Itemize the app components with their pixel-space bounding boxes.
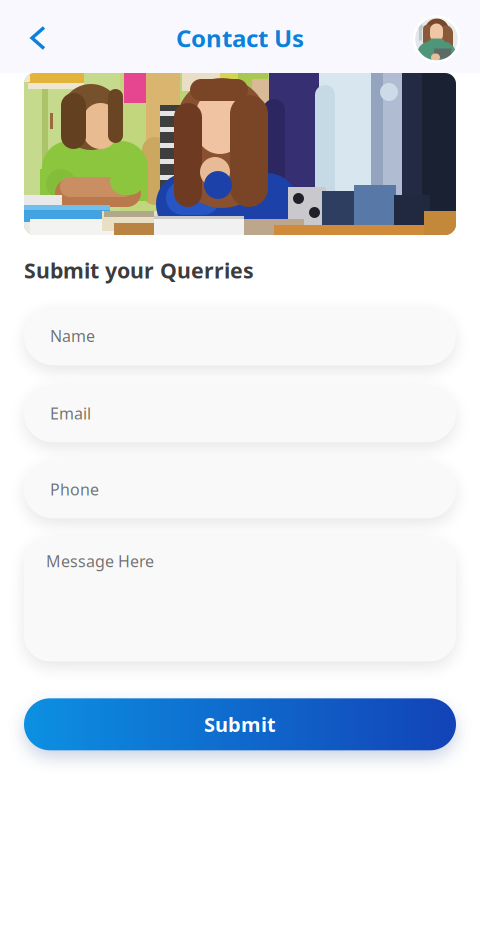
button[interactable]: Name [24, 306, 456, 365]
button[interactable]: Back [14, 15, 60, 61]
staticText: Contact Us [176, 22, 304, 54]
staticText: Submit your Querries [24, 256, 254, 284]
staticText: Message Here [46, 550, 154, 571]
button[interactable]: Submit [24, 698, 456, 750]
staticText: Email [50, 403, 91, 424]
button[interactable]: Profile [410, 12, 462, 64]
staticText: Name [50, 325, 95, 346]
staticText: Submit [204, 711, 276, 738]
staticText: Phone [50, 479, 99, 500]
button[interactable]: Message Here [24, 536, 456, 661]
button[interactable]: Phone [24, 460, 456, 518]
button[interactable]: Email [24, 384, 456, 442]
